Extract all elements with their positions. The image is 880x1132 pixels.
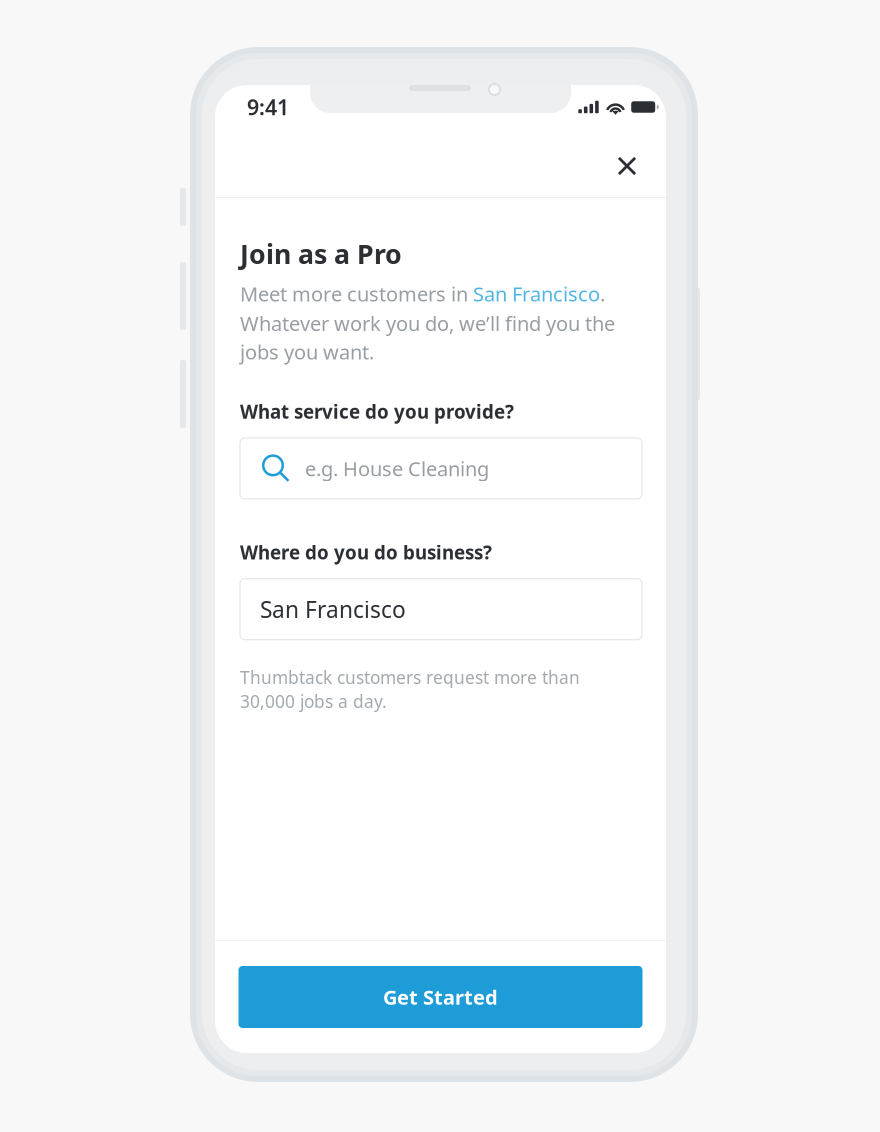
staticText: 9:41: [247, 93, 289, 121]
staticText: Join as a Pro: [240, 236, 402, 271]
staticText: Whatever work you do, we’ll find you the…: [240, 310, 615, 365]
staticText: .: [600, 280, 605, 307]
staticText: San Francisco: [260, 594, 406, 624]
staticText: Get Started: [383, 984, 498, 1010]
staticText: What service do you provide?: [240, 399, 514, 424]
staticText: Thumbtack customers request more than 30…: [240, 666, 580, 713]
staticText: e.g. House Cleaning: [305, 455, 489, 482]
staticText: Where do you do business?: [240, 540, 492, 565]
staticText: San Francisco: [473, 280, 600, 307]
button[interactable]: Get Started: [238, 966, 642, 1028]
staticText: Meet more customers in: [240, 280, 473, 307]
button[interactable]: Close: [603, 142, 651, 190]
